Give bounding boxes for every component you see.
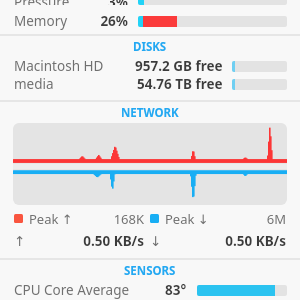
staticText: 168K	[73, 210, 144, 228]
staticText: 3%	[84, 0, 128, 5]
staticText: Peak ↑	[29, 210, 73, 228]
staticText: Memory	[14, 12, 68, 30]
staticText: SENSORS	[124, 263, 176, 279]
staticText: Macintosh HD	[14, 57, 104, 75]
staticText: 957.2 GB free	[135, 57, 223, 75]
button[interactable]: DISKS	[0, 36, 300, 57]
staticText: 6M	[209, 210, 286, 228]
staticText: 54.76 TB free	[137, 75, 223, 93]
button[interactable]: Network throughput graph	[13, 123, 287, 205]
button[interactable]: Macintosh HD	[0, 57, 300, 75]
staticText: Peak ↓	[165, 210, 209, 228]
button[interactable]: Peak ↑	[14, 208, 286, 229]
button[interactable]: NETWORK	[0, 102, 300, 123]
staticText: 0.50 KB/s	[26, 232, 144, 250]
staticText: Pressure	[14, 0, 70, 5]
button[interactable]: media	[0, 75, 300, 93]
button[interactable]: SENSORS	[0, 260, 300, 281]
staticText: CPU Core Average	[14, 281, 130, 299]
staticText: NETWORK	[121, 105, 179, 121]
staticText: 83°	[165, 281, 187, 299]
button[interactable]: ↑	[14, 229, 286, 252]
button[interactable]: CPU Core Average	[0, 281, 300, 299]
staticText: 0.50 KB/s	[162, 232, 286, 250]
staticText: ↓	[150, 233, 162, 249]
button[interactable]: Memory	[0, 12, 300, 30]
button[interactable]: Pressure	[0, 0, 300, 12]
staticText: media	[14, 75, 54, 93]
staticText: ↑	[14, 233, 26, 249]
staticText: DISKS	[133, 39, 167, 55]
staticText: 26%	[84, 12, 128, 30]
